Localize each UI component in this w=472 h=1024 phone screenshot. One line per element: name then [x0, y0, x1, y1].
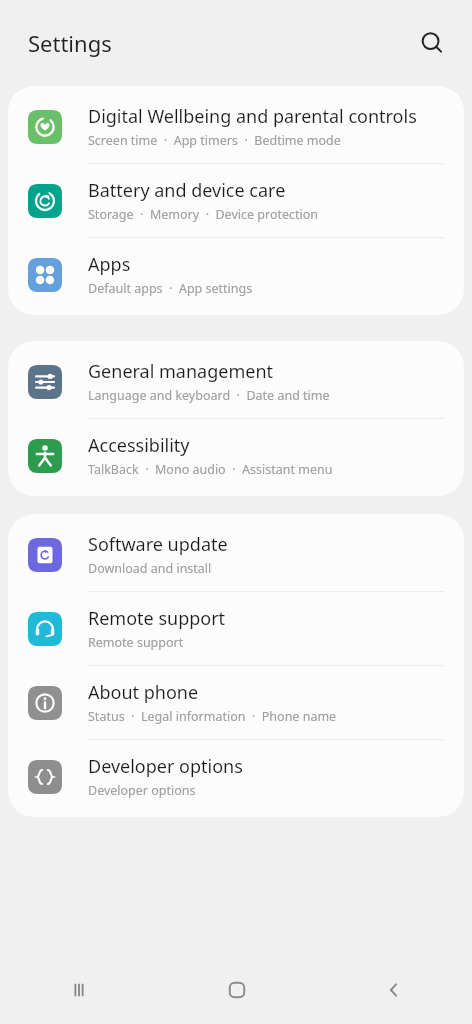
- staticText: Settings: [28, 28, 112, 58]
- button[interactable]: Home: [158, 956, 315, 1024]
- staticText: About phone: [88, 680, 199, 705]
- button[interactable]: Recents: [0, 956, 158, 1024]
- staticText: Screen time · App timers · Bedtime mode: [88, 132, 341, 149]
- button[interactable]: Back: [315, 956, 472, 1024]
- staticText: Remote support: [88, 634, 184, 651]
- staticText: Apps: [88, 252, 131, 277]
- staticText: Status · Legal information · Phone name: [88, 708, 337, 725]
- staticText: Battery and device care: [88, 178, 286, 203]
- staticText: Software update: [88, 532, 228, 557]
- staticText: Download and install: [88, 560, 212, 577]
- staticText: Default apps · App settings: [88, 280, 253, 297]
- staticText: Storage · Memory · Device protection: [88, 206, 319, 223]
- staticText: Digital Wellbeing and parental controls: [88, 104, 417, 129]
- button[interactable]: Developer options: [8, 740, 464, 813]
- staticText: TalkBack · Mono audio · Assistant menu: [88, 461, 333, 478]
- button[interactable]: Battery and device care: [8, 164, 464, 237]
- staticText: Developer options: [88, 782, 196, 799]
- staticText: General management: [88, 359, 274, 384]
- staticText: Language and keyboard · Date and time: [88, 387, 330, 404]
- button[interactable]: Apps: [8, 238, 464, 311]
- staticText: Remote support: [88, 606, 226, 631]
- button[interactable]: General management: [8, 345, 464, 418]
- button[interactable]: Remote support: [8, 592, 464, 665]
- button[interactable]: Digital Wellbeing and parental controls: [8, 90, 464, 163]
- button[interactable]: Accessibility: [8, 419, 464, 492]
- staticText: Developer options: [88, 754, 243, 779]
- staticText: Accessibility: [88, 433, 190, 458]
- button[interactable]: Software update: [8, 518, 464, 591]
- button[interactable]: About phone: [8, 666, 464, 739]
- button[interactable]: Search: [410, 21, 454, 65]
